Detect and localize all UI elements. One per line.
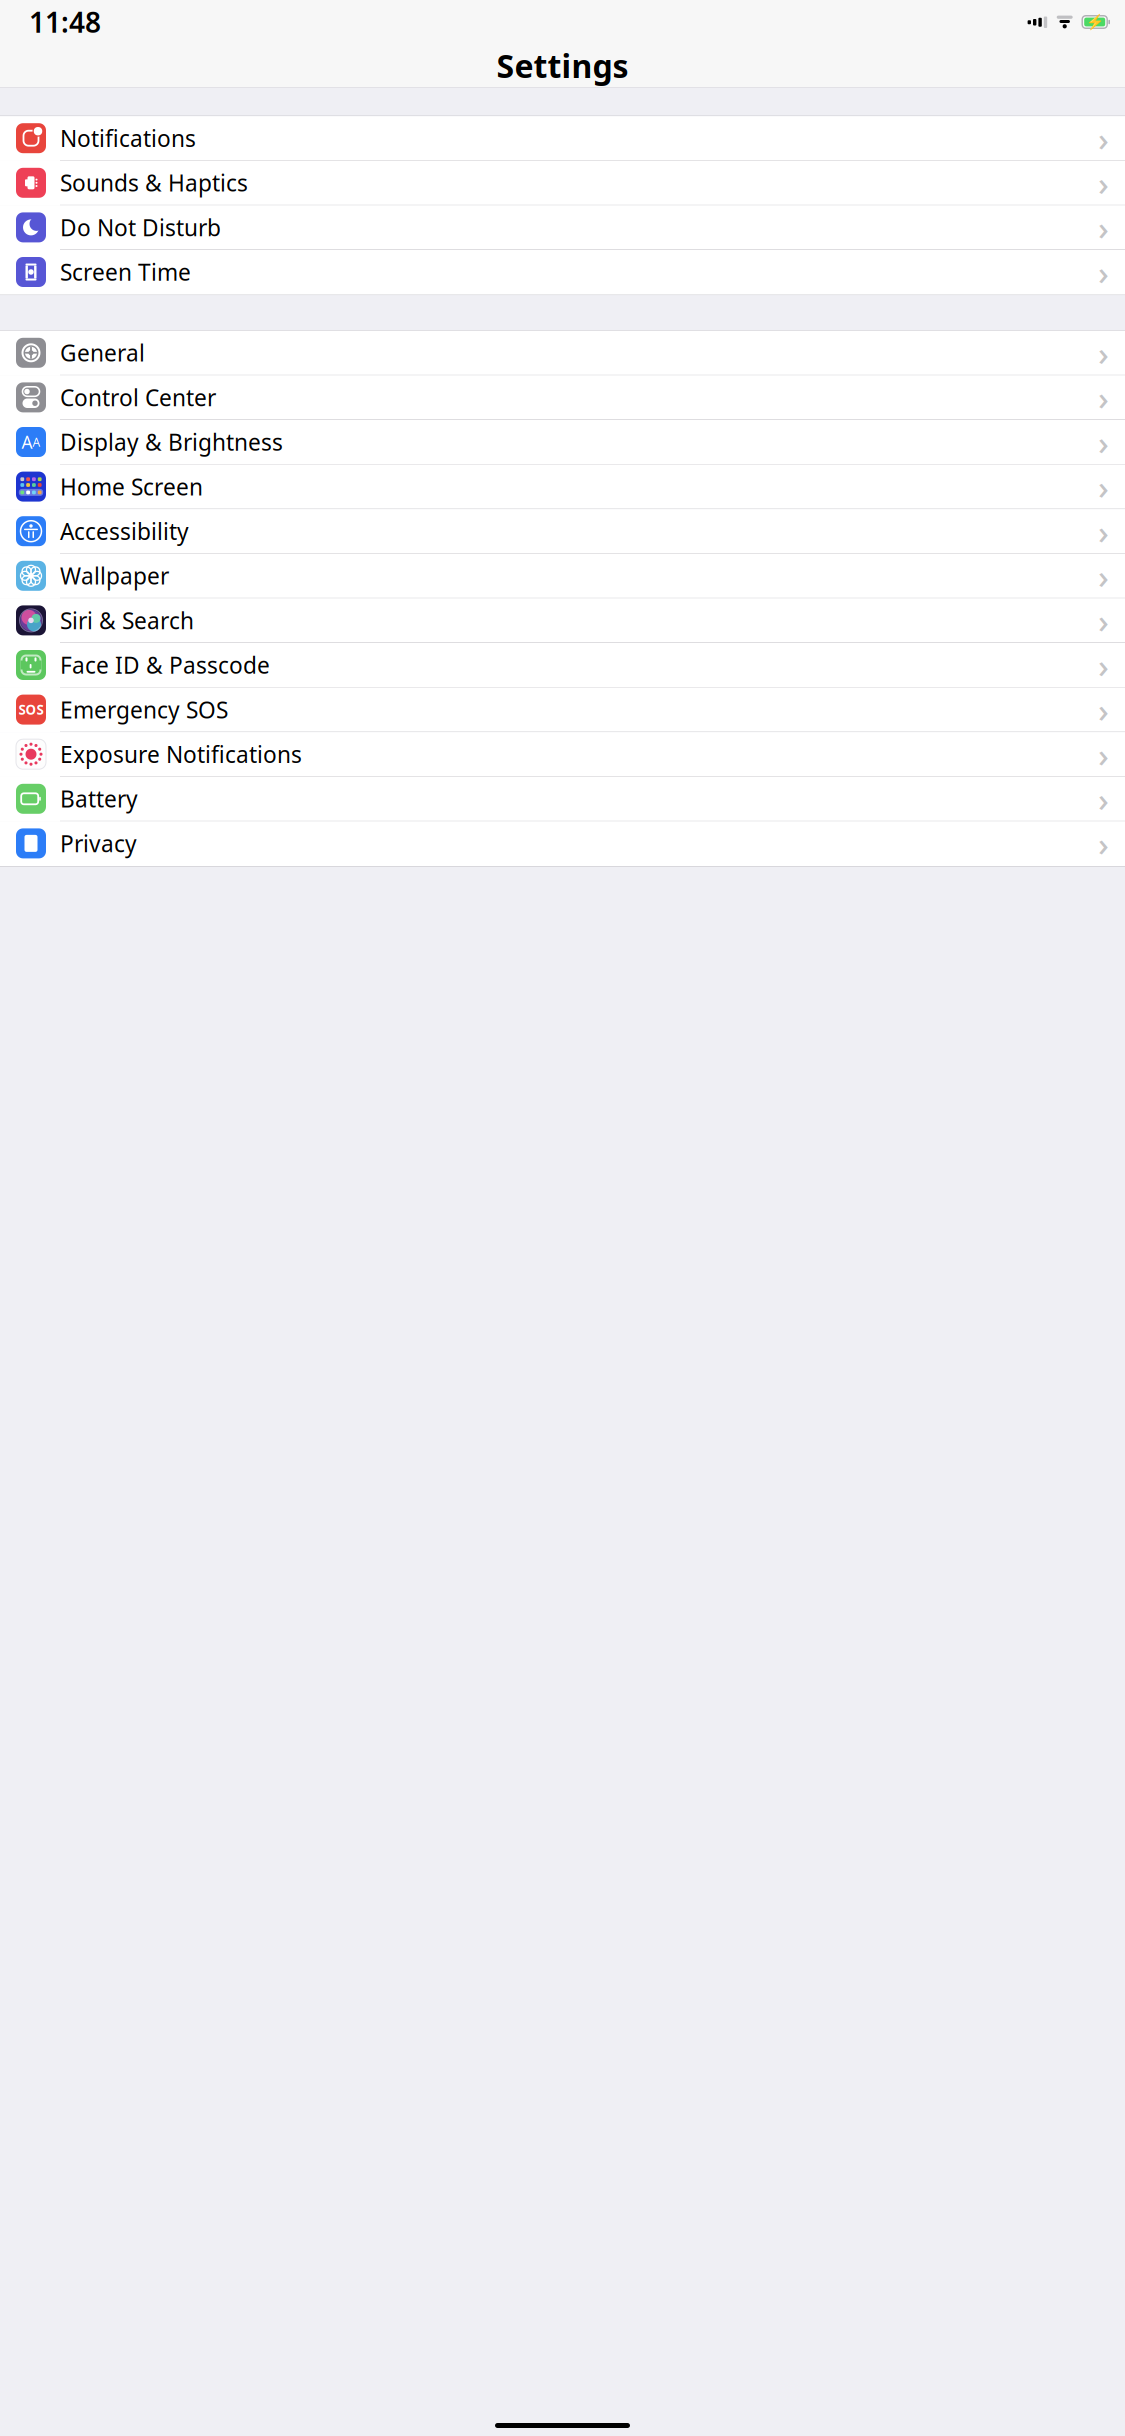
staticText: Wallpaper xyxy=(60,561,169,591)
staticText: Privacy xyxy=(60,828,137,858)
staticText: › xyxy=(1098,687,1109,732)
staticText: Display & Brightness xyxy=(60,427,283,457)
staticText: SOS xyxy=(18,701,43,718)
button[interactable]: Face ID & Passcode xyxy=(0,643,1125,688)
button[interactable]: Exposure Notifications xyxy=(0,732,1125,777)
staticText: General xyxy=(60,338,145,368)
staticText: ⚡ xyxy=(1086,14,1104,30)
button[interactable]: Control Center xyxy=(0,375,1125,420)
staticText: Notifications xyxy=(60,123,196,153)
button[interactable]: General xyxy=(0,331,1125,375)
staticText: › xyxy=(1098,732,1109,776)
staticText: › xyxy=(1098,420,1109,464)
staticText: › xyxy=(1098,464,1109,509)
button[interactable]: SOS xyxy=(0,688,1125,732)
staticText: Accessibility xyxy=(60,516,189,546)
button[interactable]: Battery xyxy=(0,777,1125,821)
button[interactable]: Do Not Disturb xyxy=(0,205,1125,250)
staticText: › xyxy=(1098,509,1109,553)
button[interactable]: Siri & Search xyxy=(0,598,1125,643)
staticText: Battery xyxy=(60,784,138,814)
staticText: Home Screen xyxy=(60,471,203,502)
button[interactable]: Screen Time xyxy=(0,250,1125,295)
staticText: › xyxy=(1098,161,1109,205)
staticText: Do Not Disturb xyxy=(60,212,221,242)
button[interactable]: Accessibility xyxy=(0,509,1125,554)
staticText: Screen Time xyxy=(60,257,191,287)
button[interactable]: Sounds & Haptics xyxy=(0,161,1125,205)
staticText: › xyxy=(1098,250,1109,294)
staticText: › xyxy=(1098,375,1109,420)
staticText: Sounds & Haptics xyxy=(60,168,248,198)
staticText: A xyxy=(21,430,32,453)
staticText: Face ID & Passcode xyxy=(60,650,270,680)
staticText: Siri & Search xyxy=(60,605,194,635)
staticText: 11:48 xyxy=(29,3,101,41)
staticText: › xyxy=(1098,777,1109,821)
staticText: › xyxy=(1098,598,1109,643)
staticText: Settings xyxy=(496,44,628,87)
button[interactable]: Notifications xyxy=(0,116,1125,161)
staticText: › xyxy=(1098,116,1109,160)
button[interactable]: Privacy xyxy=(0,821,1125,866)
staticText: Emergency SOS xyxy=(60,694,228,725)
staticText: › xyxy=(1098,554,1109,598)
staticText: A xyxy=(32,434,40,450)
button[interactable]: Home Screen xyxy=(0,465,1125,509)
staticText: › xyxy=(1098,205,1109,250)
staticText: › xyxy=(1098,643,1109,687)
button[interactable]: Wallpaper xyxy=(0,554,1125,598)
button[interactable]: A xyxy=(0,420,1125,465)
staticText: › xyxy=(1098,821,1109,866)
staticText: › xyxy=(1098,331,1109,375)
staticText: Exposure Notifications xyxy=(60,739,302,769)
staticText: Control Center xyxy=(60,382,216,412)
